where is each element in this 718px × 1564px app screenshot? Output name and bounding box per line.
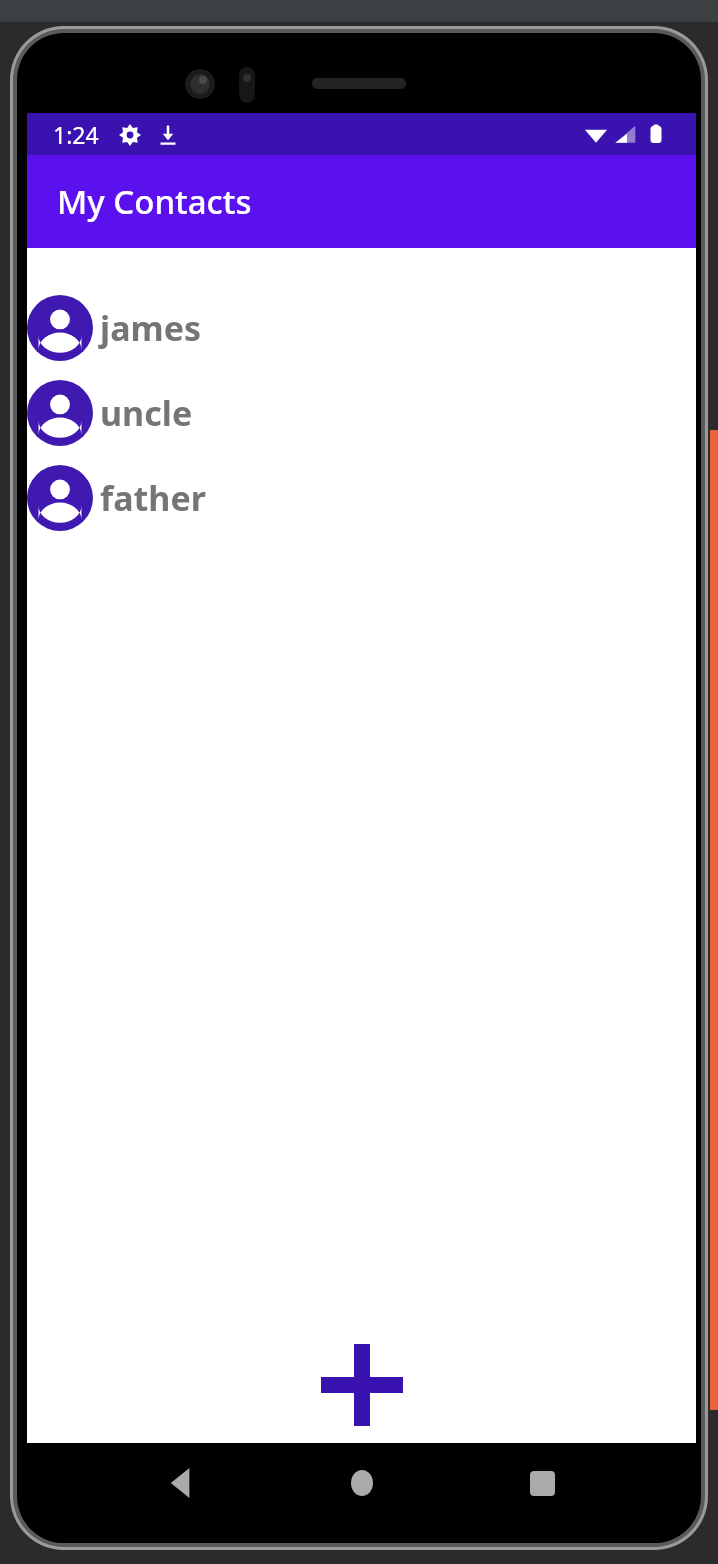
staticText: My Contacts — [57, 179, 252, 224]
button[interactable]: yeni kişi ekle — [255, 1338, 469, 1443]
button[interactable]: father — [27, 465, 696, 531]
button[interactable]: uncle — [27, 380, 696, 446]
button[interactable]: james — [27, 295, 696, 361]
staticText: uncle — [100, 390, 193, 436]
button[interactable]: Recent apps — [515, 1456, 569, 1510]
button[interactable]: Home — [335, 1456, 389, 1510]
staticText: james — [100, 305, 202, 351]
staticText: 1:24 — [53, 119, 99, 150]
button[interactable]: Back — [154, 1456, 208, 1510]
staticText: father — [100, 475, 206, 521]
